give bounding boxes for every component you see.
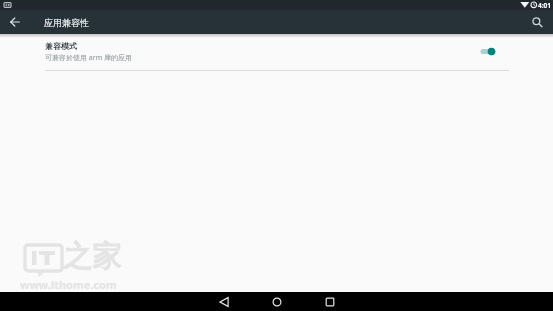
- staticText: 可兼容於使用 arm 庫的应用: [45, 53, 133, 63]
- staticText: www.ithome.com: [20, 277, 117, 292]
- staticText: 兼容模式: [45, 41, 77, 51]
- staticText: 应用兼容性: [44, 17, 89, 28]
- staticText: 4:01: [538, 1, 551, 10]
- button[interactable]: [527, 12, 547, 32]
- button[interactable]: [4, 11, 26, 33]
- button[interactable]: [197, 292, 250, 311]
- button[interactable]: [250, 292, 303, 311]
- button[interactable]: 兼容模式: [0, 34, 553, 70]
- staticText: 之家: [63, 238, 121, 275]
- button[interactable]: [480, 47, 496, 56]
- button[interactable]: [303, 292, 356, 311]
